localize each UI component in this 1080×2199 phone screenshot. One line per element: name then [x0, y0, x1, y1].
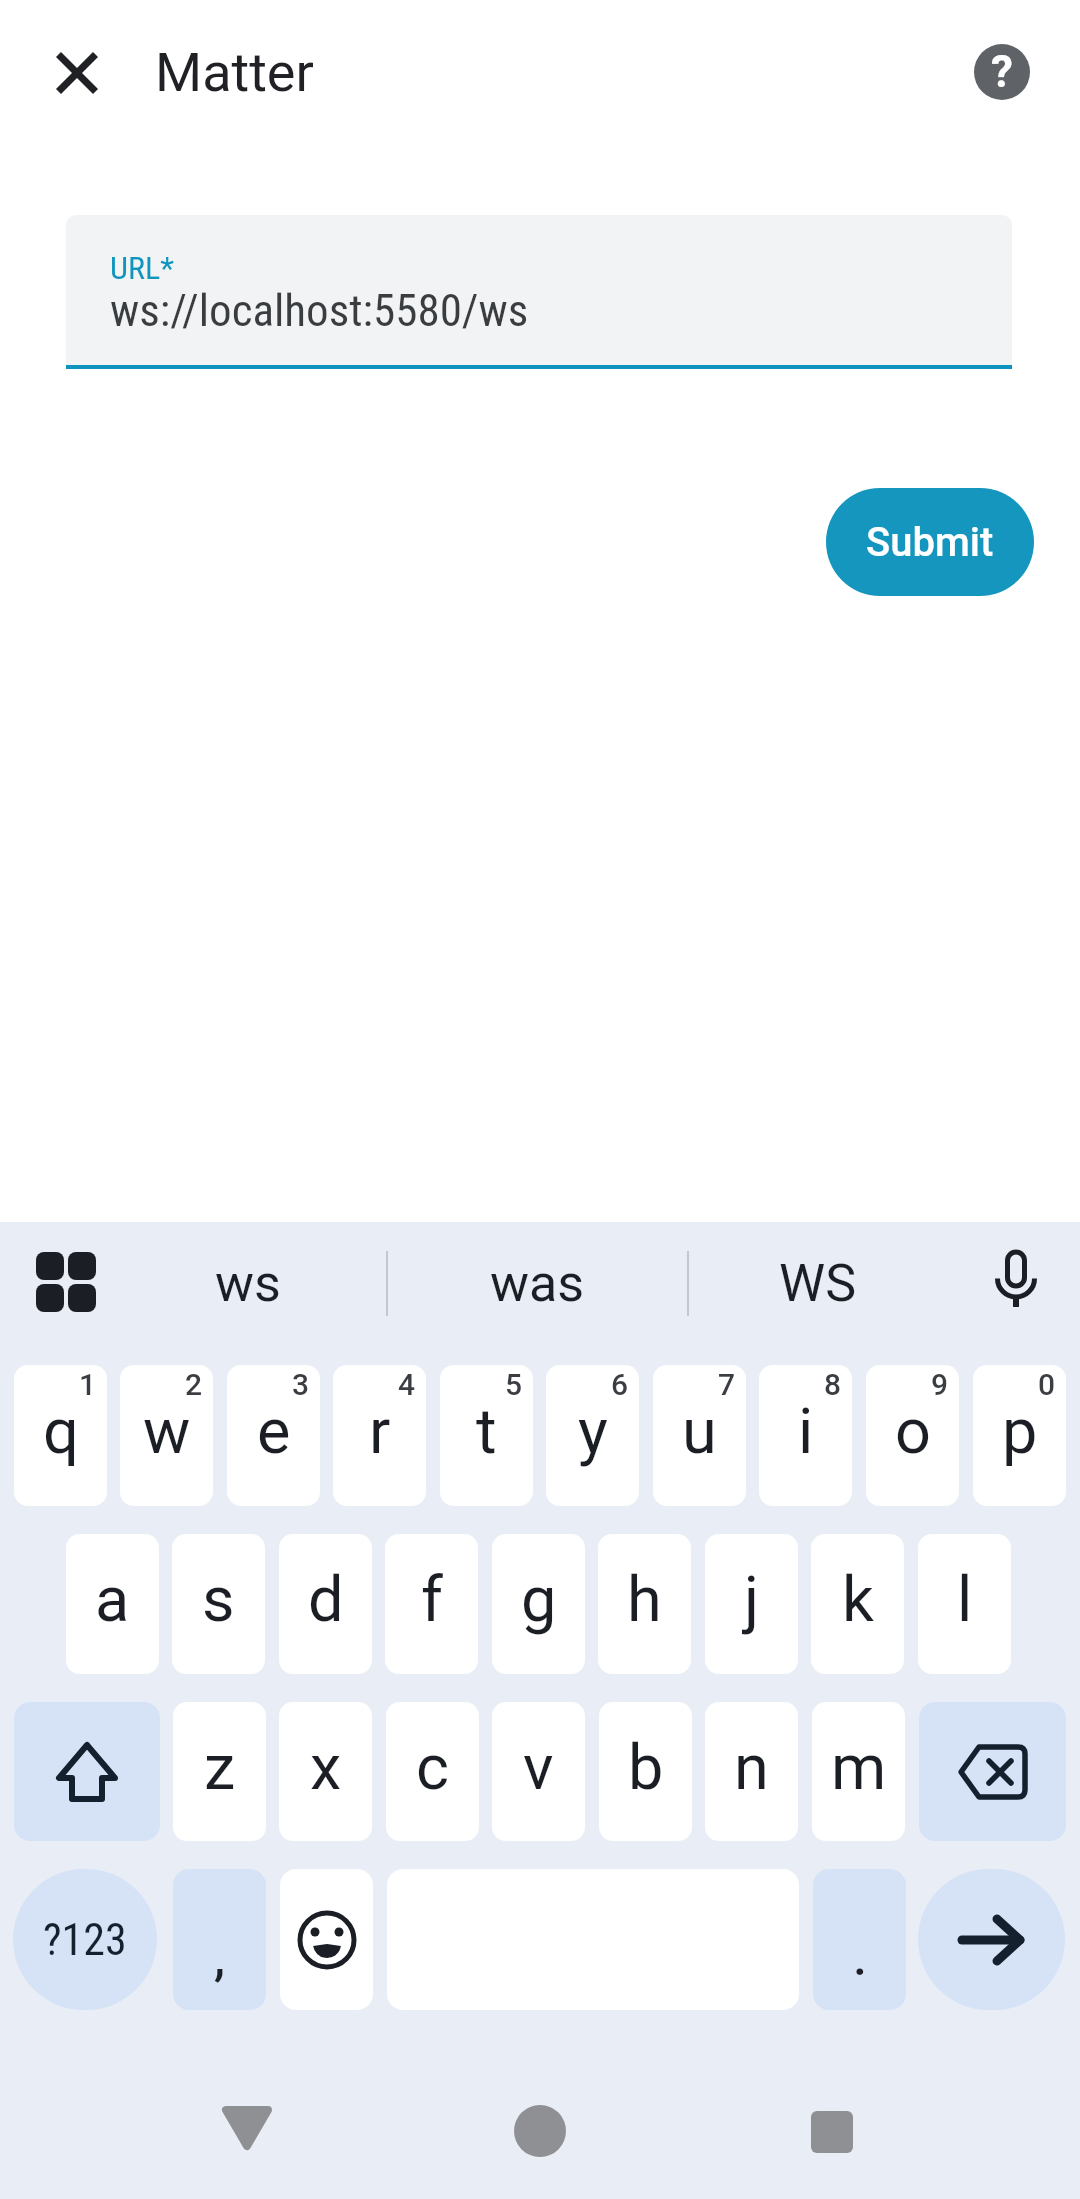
staticText: 0	[1038, 1367, 1056, 1402]
button[interactable]: was	[389, 1228, 686, 1338]
staticText: y	[578, 1395, 608, 1469]
staticText: was	[490, 1253, 585, 1314]
button[interactable]: ?123	[13, 1869, 157, 2010]
button[interactable]: j	[705, 1534, 798, 1674]
staticText: b	[628, 1731, 664, 1805]
button[interactable]: n	[705, 1702, 798, 1841]
staticText: s	[202, 1563, 235, 1637]
staticText: i	[798, 1395, 814, 1469]
staticText: x	[310, 1731, 342, 1805]
button[interactable]	[496, 2087, 584, 2175]
staticText: t	[476, 1395, 497, 1469]
button[interactable]: s	[172, 1534, 265, 1674]
staticText: 6	[611, 1367, 629, 1402]
button[interactable]	[280, 1869, 373, 2010]
staticText: w	[143, 1395, 191, 1469]
button[interactable]	[919, 1702, 1066, 1841]
button[interactable]	[203, 2084, 291, 2172]
staticText: u	[682, 1395, 717, 1469]
button[interactable]: l	[918, 1534, 1011, 1674]
staticText: Submit	[866, 519, 994, 566]
staticText: k	[842, 1563, 874, 1637]
staticText: 5	[505, 1367, 523, 1402]
button[interactable]: URL*	[66, 215, 1012, 369]
button[interactable]	[972, 1238, 1060, 1326]
button[interactable]: Submit	[826, 488, 1034, 596]
staticText: f	[421, 1563, 443, 1637]
staticText: c	[416, 1731, 449, 1805]
button[interactable]	[788, 2088, 876, 2176]
staticText: WS	[779, 1253, 857, 1314]
button[interactable]: ws	[110, 1228, 386, 1338]
staticText: URL*	[110, 249, 174, 285]
staticText: ?	[991, 46, 1013, 98]
button[interactable]: w	[120, 1365, 213, 1506]
button[interactable]: c	[386, 1702, 479, 1841]
button[interactable]: z	[173, 1702, 266, 1841]
staticText: ws	[215, 1253, 281, 1314]
button[interactable]: f	[385, 1534, 478, 1674]
button[interactable]: v	[492, 1702, 585, 1841]
staticText: 7	[718, 1367, 736, 1402]
button[interactable]: k	[811, 1534, 904, 1674]
staticText: j	[744, 1563, 760, 1637]
button[interactable]: a	[66, 1534, 159, 1674]
staticText: e	[257, 1395, 291, 1469]
button[interactable]: y	[546, 1365, 639, 1506]
staticText: Matter	[155, 41, 314, 104]
button[interactable]: ,	[173, 1869, 266, 2010]
button[interactable]: h	[598, 1534, 691, 1674]
button[interactable]	[14, 1702, 160, 1841]
staticText: .	[853, 1929, 867, 1988]
button[interactable]: g	[492, 1534, 585, 1674]
staticText: z	[204, 1731, 236, 1805]
staticText: 4	[398, 1367, 416, 1402]
staticText: r	[369, 1395, 391, 1469]
staticText: 9	[931, 1367, 949, 1402]
staticText: 1	[79, 1367, 97, 1402]
staticText: 8	[824, 1367, 842, 1402]
staticText: n	[734, 1731, 769, 1805]
button[interactable]: ?	[974, 44, 1030, 100]
staticText: q	[43, 1395, 79, 1469]
button[interactable]	[33, 29, 121, 117]
staticText: a	[95, 1563, 130, 1637]
button[interactable]: WS	[690, 1228, 946, 1338]
staticText: l	[957, 1563, 973, 1637]
button[interactable]: m	[812, 1702, 905, 1841]
button[interactable]: b	[599, 1702, 692, 1841]
button[interactable]: i	[759, 1365, 852, 1506]
staticText: p	[1002, 1395, 1038, 1469]
staticText: ?123	[43, 1914, 127, 1966]
staticText: ,	[214, 1929, 226, 1988]
staticText: 3	[292, 1367, 310, 1402]
staticText: v	[523, 1731, 554, 1805]
button[interactable]: r	[333, 1365, 426, 1506]
button[interactable]	[22, 1238, 110, 1326]
staticText: 2	[185, 1367, 203, 1402]
button[interactable]: t	[440, 1365, 533, 1506]
button[interactable]: d	[279, 1534, 372, 1674]
staticText: ws://localhost:5580/ws	[110, 284, 529, 337]
button[interactable]: p	[973, 1365, 1066, 1506]
staticText: m	[831, 1731, 887, 1805]
button[interactable]	[918, 1869, 1065, 2010]
button[interactable]: .	[813, 1869, 906, 2010]
button[interactable]: u	[653, 1365, 746, 1506]
button[interactable]: q	[14, 1365, 107, 1506]
button[interactable]: o	[866, 1365, 959, 1506]
staticText: o	[895, 1395, 931, 1469]
staticText: d	[308, 1563, 344, 1637]
button[interactable]: x	[279, 1702, 372, 1841]
staticText: g	[521, 1563, 557, 1637]
staticText: h	[627, 1563, 662, 1637]
button[interactable]: e	[227, 1365, 320, 1506]
